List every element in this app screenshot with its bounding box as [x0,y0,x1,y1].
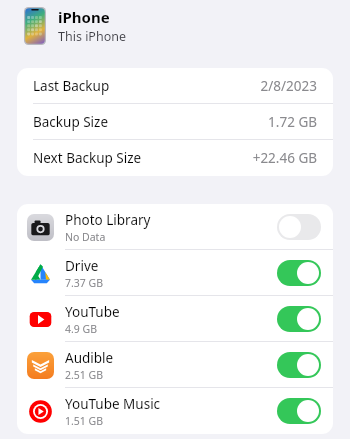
button[interactable]: Toggle on [277,260,321,286]
staticText: Backup Size [33,113,109,131]
staticText: 4.9 GB [65,322,98,336]
staticText: 1.72 GB [268,113,317,131]
button[interactable]: Toggle off [277,214,321,240]
staticText: Audible [65,349,114,367]
button[interactable]: Toggle on [277,352,321,378]
staticText: YouTube [65,303,120,321]
button[interactable]: Backup Size [17,104,333,140]
button[interactable]: Next Backup Size [17,140,333,176]
staticText: Photo Library [65,211,151,229]
staticText: YouTube Music [65,395,161,413]
button[interactable]: Toggle on [277,306,321,332]
staticText: 2/8/2023 [260,77,317,95]
staticText: +22.46 GB [252,149,317,167]
staticText: 1.51 GB [65,414,104,428]
staticText: 2.51 GB [65,368,104,382]
staticText: Drive [65,257,99,275]
staticText: No Data [65,230,106,244]
button[interactable]: Audible [17,342,333,388]
button[interactable]: Last Backup [17,68,333,104]
button[interactable]: Photo Library [17,204,333,250]
staticText: 7.37 GB [65,276,104,290]
button[interactable]: YouTube Music [17,388,333,434]
button[interactable]: Toggle on [277,398,321,424]
staticText: iPhone [58,7,110,27]
button[interactable]: YouTube [17,296,333,342]
staticText: Last Backup [33,77,110,95]
button[interactable]: Drive [17,250,333,296]
staticText: This iPhone [58,28,126,45]
staticText: Next Backup Size [33,149,142,167]
